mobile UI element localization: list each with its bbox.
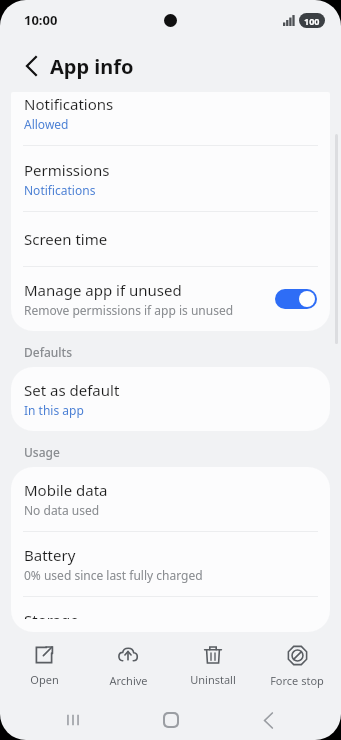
button[interactable]: Permissions — [11, 146, 330, 211]
staticText: Defaults — [24, 344, 73, 360]
button[interactable]: Storage — [11, 597, 330, 632]
staticText: Usage — [24, 444, 60, 460]
button[interactable]: Manage app if unused — [11, 267, 330, 331]
button[interactable]: Battery — [11, 532, 330, 596]
staticText: Manage app if unused — [24, 280, 182, 300]
staticText: 10:00 — [24, 11, 58, 29]
staticText: Uninstall — [190, 672, 236, 687]
button[interactable]: Set as default — [11, 367, 330, 431]
staticText: Archive — [109, 673, 148, 688]
staticText: Force stop — [270, 673, 324, 688]
staticText: App info — [50, 53, 134, 80]
staticText: Mobile data — [24, 480, 108, 500]
staticText: Battery — [24, 545, 76, 565]
staticText: 100 — [304, 15, 320, 27]
staticText: Notifications — [24, 94, 114, 114]
staticText: In this app — [24, 402, 84, 418]
staticText: Screen time — [24, 229, 108, 249]
button[interactable]: Manage app if unused toggle — [275, 289, 317, 309]
button[interactable]: Notifications — [11, 92, 330, 145]
staticText: Notifications — [24, 182, 96, 198]
button[interactable]: Screen time — [11, 212, 330, 266]
button[interactable]: Back — [244, 700, 292, 740]
staticText: Remove permissions if app is unused — [24, 302, 234, 318]
staticText: Set as default — [24, 380, 120, 400]
button[interactable]: Home — [147, 700, 195, 740]
button[interactable]: Recents — [49, 700, 97, 740]
button[interactable]: Archive — [88, 640, 168, 692]
staticText: Allowed — [24, 116, 69, 132]
button[interactable]: Force stop — [257, 641, 337, 692]
staticText: Open — [30, 672, 59, 687]
staticText: Storage — [24, 610, 79, 619]
button[interactable]: Mobile data — [11, 467, 330, 531]
button[interactable]: Uninstall — [173, 641, 253, 691]
button[interactable]: Back — [14, 48, 50, 84]
staticText: Permissions — [24, 160, 110, 180]
button[interactable]: Open — [4, 641, 84, 691]
staticText: 0% used since last fully charged — [24, 567, 203, 583]
staticText: No data used — [24, 502, 100, 518]
